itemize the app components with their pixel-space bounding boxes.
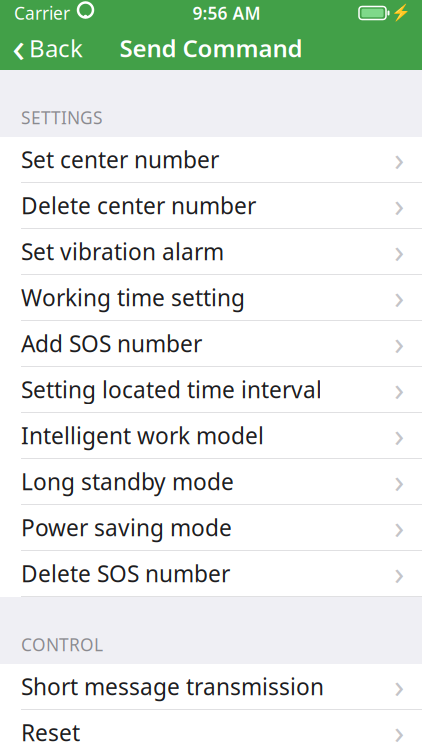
button[interactable]: Working time setting: [0, 275, 422, 321]
staticText: Intelligent work model: [21, 420, 264, 450]
button[interactable]: Set center number: [0, 137, 422, 183]
button[interactable]: Setting located time interval: [0, 367, 422, 413]
staticText: ›: [394, 274, 404, 318]
staticText: SETTINGS: [21, 106, 103, 129]
staticText: CONTROL: [21, 633, 103, 656]
staticText: Reset: [21, 717, 80, 747]
staticText: 9:56 AM: [192, 1, 260, 24]
staticText: Power saving mode: [21, 512, 232, 542]
staticText: ›: [394, 136, 404, 180]
staticText: ‹: [12, 18, 25, 74]
staticText: Setting located time interval: [21, 374, 322, 404]
button[interactable]: ‹: [0, 26, 95, 70]
staticText: ›: [394, 709, 404, 750]
button[interactable]: Intelligent work model: [0, 413, 422, 459]
button[interactable]: Delete center number: [0, 183, 422, 229]
staticText: Set center number: [21, 144, 219, 174]
button[interactable]: Short message transmission: [0, 664, 422, 710]
staticText: Delete SOS number: [21, 558, 230, 588]
staticText: Working time setting: [21, 282, 245, 312]
staticText: Delete center number: [21, 190, 256, 220]
staticText: Set vibration alarm: [21, 236, 224, 266]
staticText: Send Command: [119, 32, 302, 64]
staticText: ›: [394, 663, 404, 707]
button[interactable]: Long standby mode: [0, 459, 422, 505]
staticText: Add SOS number: [21, 328, 202, 358]
staticText: Short message transmission: [21, 671, 324, 701]
staticText: Long standby mode: [21, 466, 234, 496]
staticText: ›: [394, 458, 404, 502]
staticText: ⚡: [391, 4, 411, 22]
staticText: ›: [394, 504, 404, 548]
button[interactable]: Power saving mode: [0, 505, 422, 551]
staticText: ›: [394, 366, 404, 410]
staticText: ›: [394, 182, 404, 226]
staticText: ›: [394, 228, 404, 272]
button[interactable]: Reset: [0, 710, 422, 750]
staticText: Back: [29, 32, 83, 64]
staticText: ›: [394, 412, 404, 456]
button[interactable]: Delete SOS number: [0, 551, 422, 597]
button[interactable]: Add SOS number: [0, 321, 422, 367]
button[interactable]: Set vibration alarm: [0, 229, 422, 275]
staticText: ›: [394, 320, 404, 364]
staticText: Carrier: [14, 1, 70, 24]
staticText: ›: [394, 550, 404, 594]
